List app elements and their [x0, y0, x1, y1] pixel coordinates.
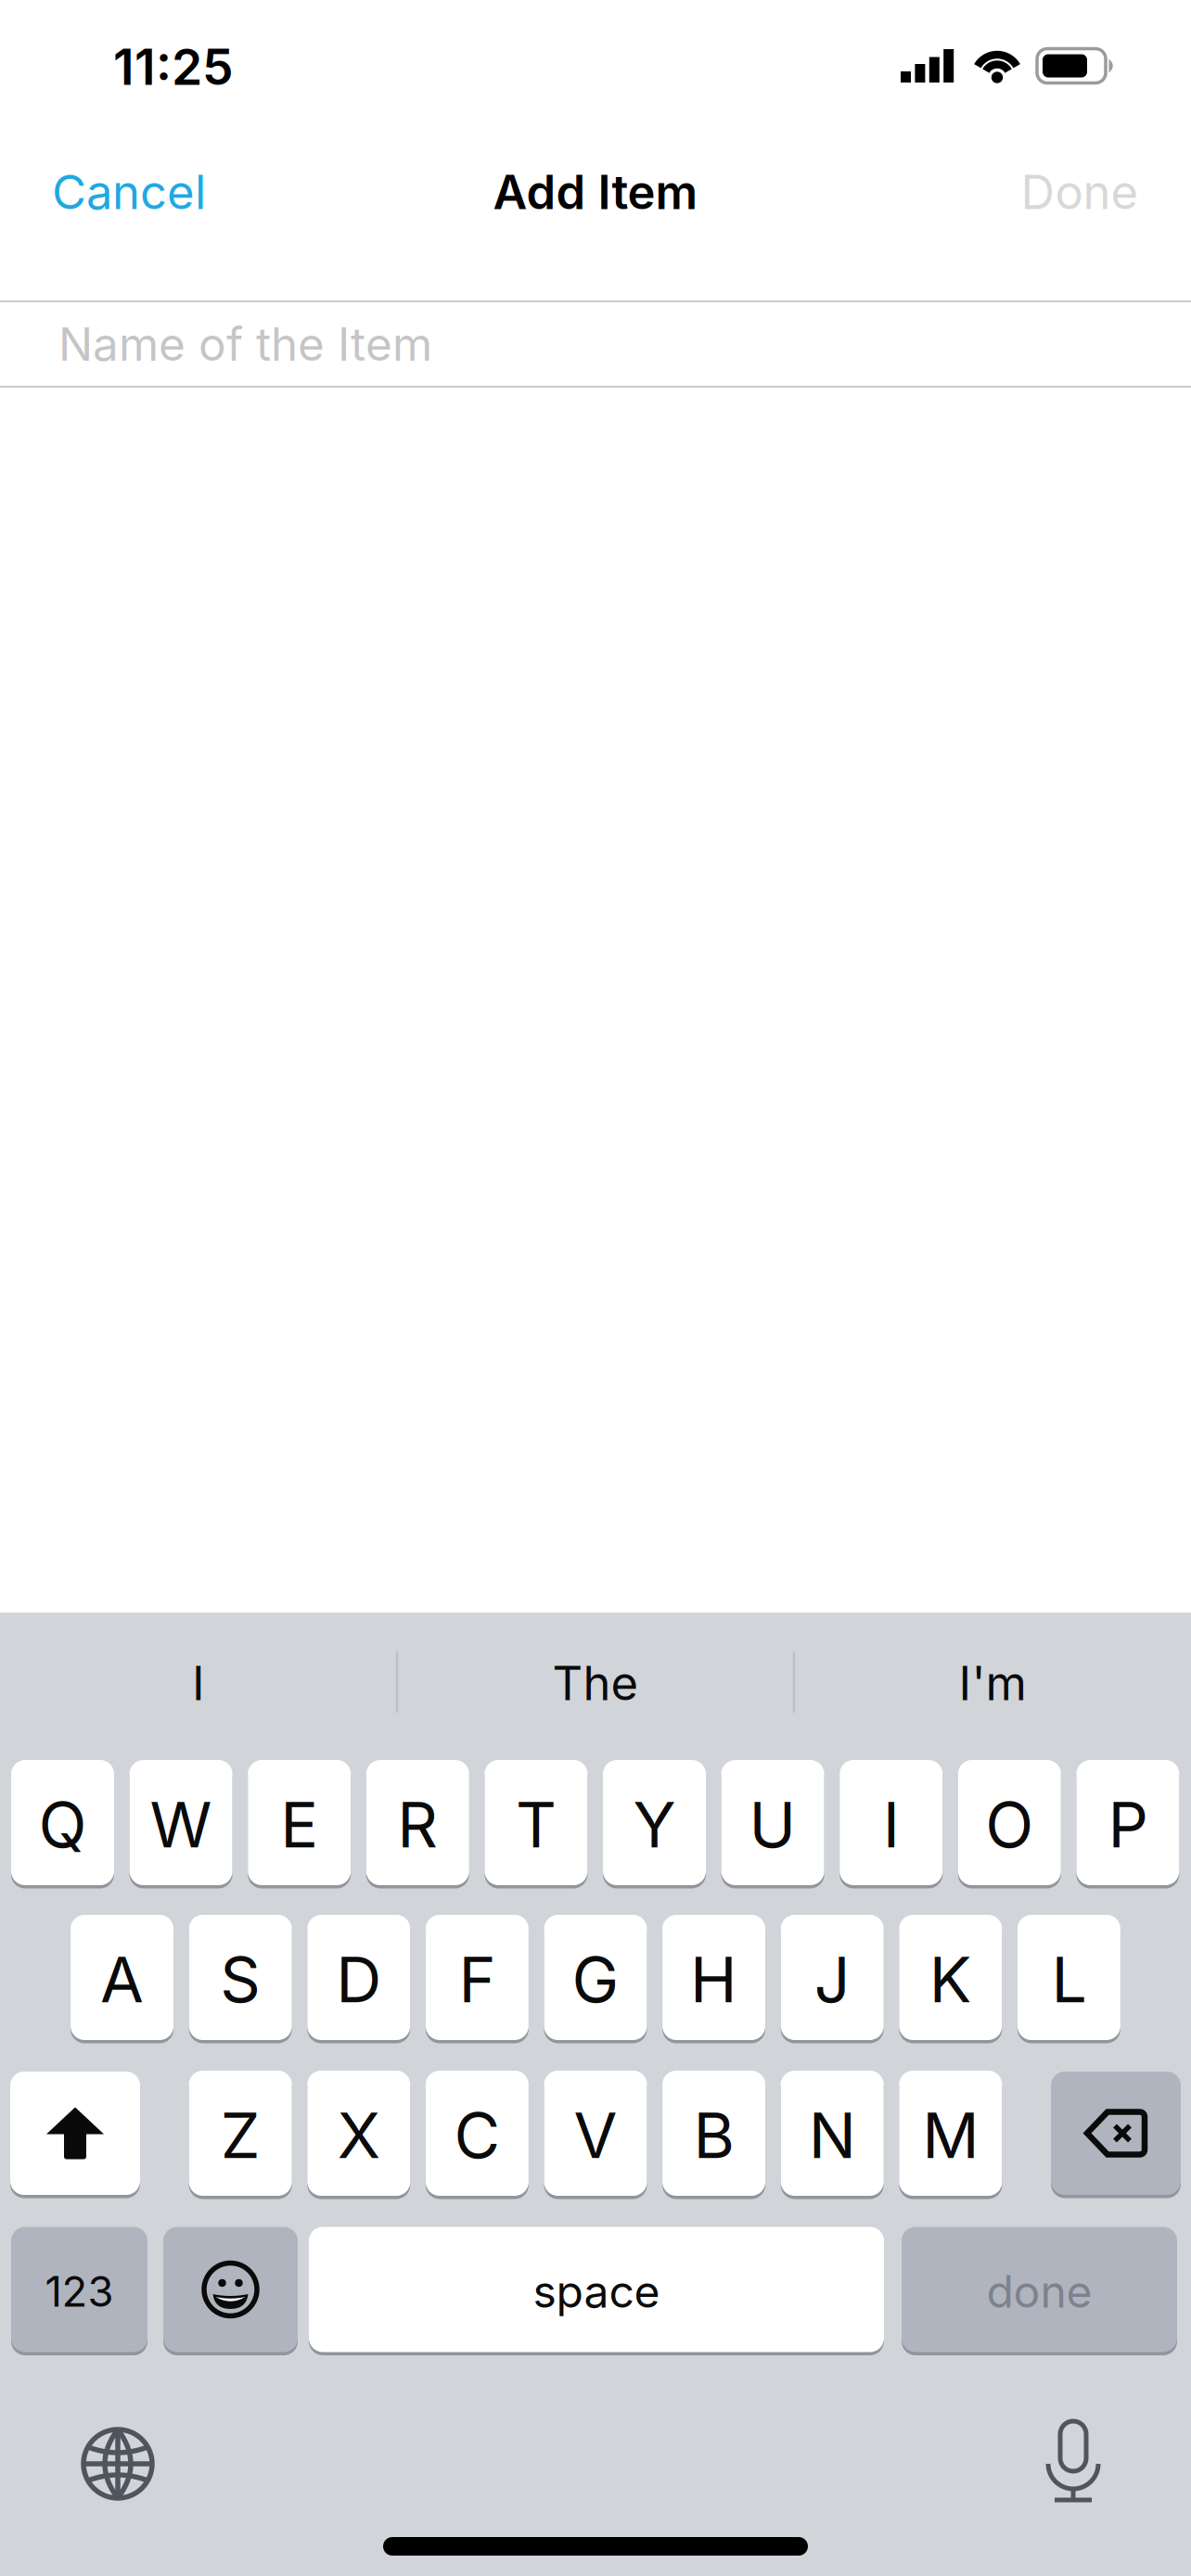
- button[interactable]: X: [307, 2069, 410, 2198]
- button[interactable]: Emoji: [163, 2225, 298, 2354]
- staticText: T: [516, 1787, 556, 1862]
- staticText: 123: [45, 2267, 114, 2316]
- staticText: space: [533, 2265, 660, 2318]
- button[interactable]: I'm: [798, 1627, 1187, 1739]
- button[interactable]: B: [662, 2069, 765, 2198]
- button[interactable]: L: [1017, 1913, 1120, 2042]
- button[interactable]: The: [401, 1627, 790, 1739]
- button[interactable]: space: [309, 2225, 884, 2354]
- button[interactable]: Next keyboard: [81, 2427, 155, 2501]
- button[interactable]: E: [248, 1758, 351, 1887]
- button[interactable]: Q: [11, 1758, 114, 1887]
- staticText: F: [459, 1942, 496, 2016]
- button[interactable]: O: [958, 1758, 1061, 1887]
- button[interactable]: Numbers: [11, 2225, 147, 2354]
- staticText: I: [883, 1787, 899, 1862]
- button[interactable]: Done: [1021, 164, 1139, 220]
- staticText: J: [814, 1942, 850, 2016]
- staticText: Name of the Item: [58, 317, 432, 371]
- button[interactable]: P: [1076, 1758, 1179, 1887]
- staticText: O: [985, 1787, 1034, 1862]
- button[interactable]: W: [129, 1758, 232, 1887]
- staticText: S: [220, 1942, 261, 2016]
- button[interactable]: S: [189, 1913, 292, 2042]
- button[interactable]: R: [366, 1758, 469, 1887]
- button[interactable]: Dictate: [1046, 2421, 1100, 2503]
- button[interactable]: Y: [603, 1758, 706, 1887]
- staticText: W: [150, 1787, 212, 1862]
- staticText: done: [986, 2265, 1092, 2318]
- button[interactable]: Cancel: [52, 164, 206, 220]
- button[interactable]: F: [426, 1913, 529, 2042]
- staticText: V: [574, 2098, 617, 2172]
- button[interactable]: C: [426, 2069, 529, 2198]
- button[interactable]: V: [544, 2069, 647, 2198]
- staticText: L: [1051, 1942, 1087, 2016]
- button[interactable]: M: [899, 2069, 1002, 2198]
- staticText: E: [280, 1787, 318, 1862]
- button[interactable]: Delete: [1051, 2070, 1181, 2197]
- button[interactable]: J: [781, 1913, 884, 2042]
- staticText: B: [693, 2098, 734, 2172]
- staticText: Add Item: [493, 164, 698, 220]
- staticText: I'm: [959, 1655, 1026, 1711]
- button[interactable]: I: [4, 1627, 393, 1739]
- staticText: K: [929, 1942, 972, 2016]
- button[interactable]: N: [781, 2069, 884, 2198]
- staticText: X: [337, 2098, 380, 2172]
- staticText: Cancel: [52, 164, 206, 220]
- staticText: G: [572, 1942, 619, 2016]
- staticText: Done: [1021, 164, 1139, 220]
- staticText: P: [1108, 1787, 1148, 1862]
- staticText: Y: [633, 1787, 676, 1862]
- staticText: H: [690, 1942, 738, 2016]
- button[interactable]: A: [71, 1913, 174, 2042]
- button[interactable]: Shift: [10, 2070, 140, 2197]
- button[interactable]: Z: [189, 2069, 292, 2198]
- button[interactable]: U: [721, 1758, 824, 1887]
- button[interactable]: G: [544, 1913, 647, 2042]
- staticText: C: [454, 2098, 500, 2172]
- button[interactable]: T: [485, 1758, 588, 1887]
- staticText: I: [192, 1655, 205, 1711]
- button[interactable]: done: [902, 2225, 1177, 2354]
- staticText: A: [100, 1942, 144, 2016]
- staticText: 11:25: [113, 38, 234, 96]
- button[interactable]: I: [840, 1758, 943, 1887]
- staticText: The: [552, 1655, 639, 1711]
- staticText: U: [749, 1787, 796, 1862]
- staticText: N: [809, 2098, 856, 2172]
- staticText: M: [922, 2098, 979, 2172]
- staticText: R: [397, 1787, 438, 1862]
- button[interactable]: K: [899, 1913, 1002, 2042]
- staticText: Q: [38, 1787, 87, 1862]
- staticText: D: [336, 1942, 382, 2016]
- button[interactable]: D: [307, 1913, 410, 2042]
- staticText: Z: [220, 2098, 260, 2172]
- button[interactable]: H: [662, 1913, 765, 2042]
